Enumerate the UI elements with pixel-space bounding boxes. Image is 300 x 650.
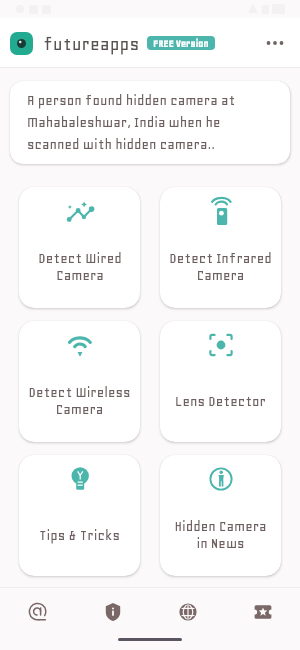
button[interactable]: Tips & Tricks bbox=[19, 455, 140, 576]
button[interactable]: Website bbox=[150, 587, 225, 637]
staticText: Detect Infrared Camera bbox=[169, 250, 272, 283]
staticText: FREE Version bbox=[153, 38, 209, 49]
button[interactable]: More options bbox=[256, 24, 294, 62]
staticText: Hidden Camera in News bbox=[174, 518, 267, 551]
staticText: Detect Wireless Camera bbox=[28, 384, 131, 417]
button[interactable]: Detect Infrared Camera bbox=[160, 187, 281, 308]
staticText: A person found hidden camera at Mahabale… bbox=[27, 92, 276, 152]
button[interactable]: Hidden Camera in News bbox=[160, 455, 281, 576]
button[interactable]: App logo bbox=[10, 32, 33, 55]
button[interactable]: Detect Wired Camera bbox=[19, 187, 140, 308]
staticText: Lens Detector bbox=[175, 393, 266, 409]
staticText: futureapps bbox=[43, 33, 140, 54]
button[interactable]: Lens Detector bbox=[160, 321, 281, 442]
button[interactable]: Email bbox=[0, 587, 75, 637]
button[interactable]: Detect Wireless Camera bbox=[19, 321, 140, 442]
button[interactable]: A person found hidden camera at Mahabale… bbox=[10, 81, 290, 164]
staticText: Detect Wired Camera bbox=[38, 250, 122, 283]
staticText: Tips & Tricks bbox=[39, 527, 120, 543]
button[interactable]: Privacy policy bbox=[75, 587, 150, 637]
button[interactable]: FREE Version bbox=[147, 36, 215, 50]
button[interactable]: Rate us bbox=[225, 587, 300, 637]
